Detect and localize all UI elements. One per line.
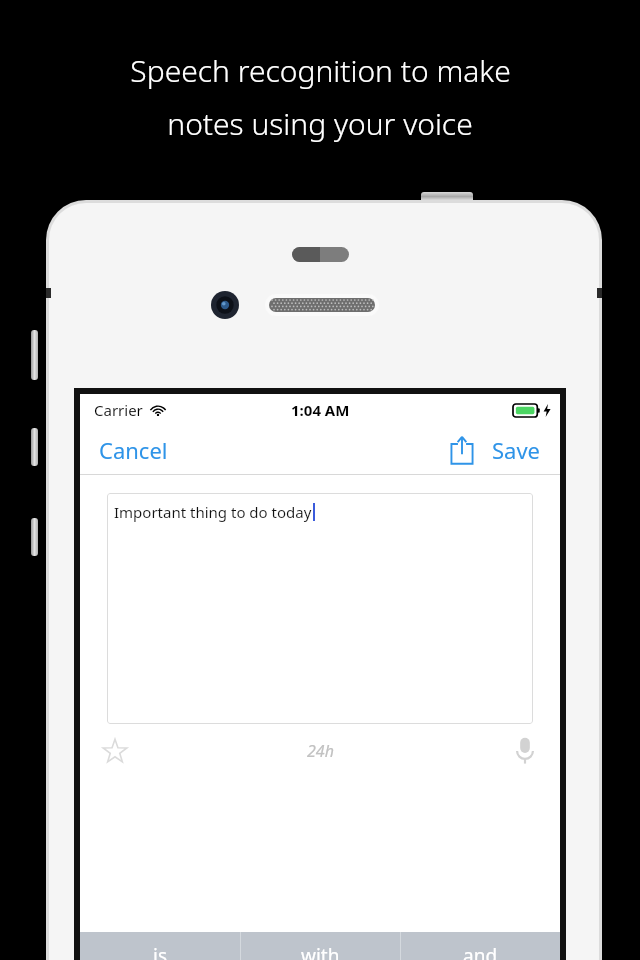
staticText: Cancel — [99, 435, 168, 465]
button[interactable]: Important thing to do today — [107, 493, 533, 724]
button[interactable]: 24h — [293, 734, 348, 768]
staticText: Carrier — [94, 400, 143, 420]
button[interactable]: Save — [484, 427, 560, 473]
button[interactable]: Cancel — [80, 427, 187, 473]
staticText: 1:04 AM — [291, 400, 350, 420]
button[interactable]: and — [401, 932, 560, 960]
button[interactable]: Share — [440, 429, 484, 471]
staticText: Save — [492, 435, 541, 465]
button[interactable]: Favorite — [96, 732, 134, 770]
button[interactable]: with — [241, 932, 400, 960]
staticText: is — [153, 943, 168, 960]
staticText: 24h — [307, 740, 334, 762]
staticText: Speech recognition to make — [130, 50, 511, 91]
button[interactable]: is — [80, 932, 240, 960]
staticText: and — [463, 943, 498, 960]
staticText: with — [301, 943, 340, 960]
button[interactable]: Voice input — [508, 731, 542, 771]
staticText: Important thing to do today — [114, 502, 312, 522]
staticText: notes using your voice — [167, 103, 473, 144]
